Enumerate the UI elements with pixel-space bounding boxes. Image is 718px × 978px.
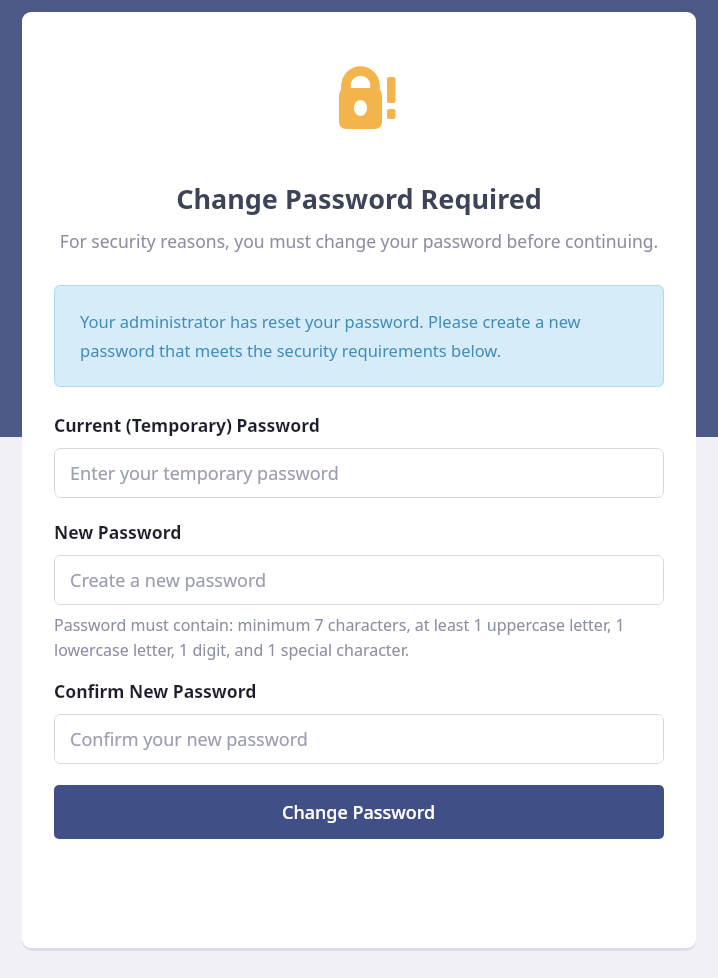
other: Password warning [334,64,396,132]
staticText: Your administrator has reset your passwo… [80,310,638,362]
button[interactable]: Enter your temporary password [54,448,664,498]
staticText: For security reasons, you must change yo… [50,229,668,253]
button[interactable]: Confirm your new password [54,714,664,764]
staticText: Confirm your new password [70,727,308,752]
staticText: Create a new password [70,568,267,593]
button[interactable]: Create a new password [54,555,664,605]
staticText: Password must contain: minimum 7 charact… [54,614,664,660]
staticText: New Password [54,520,182,544]
button[interactable]: Change Password [54,785,664,839]
staticText: Confirm New Password [54,679,257,703]
staticText: Current (Temporary) Password [54,413,320,437]
staticText: Change Password Required [22,180,696,217]
staticText: Change Password [282,800,436,825]
staticText: Enter your temporary password [70,461,339,486]
